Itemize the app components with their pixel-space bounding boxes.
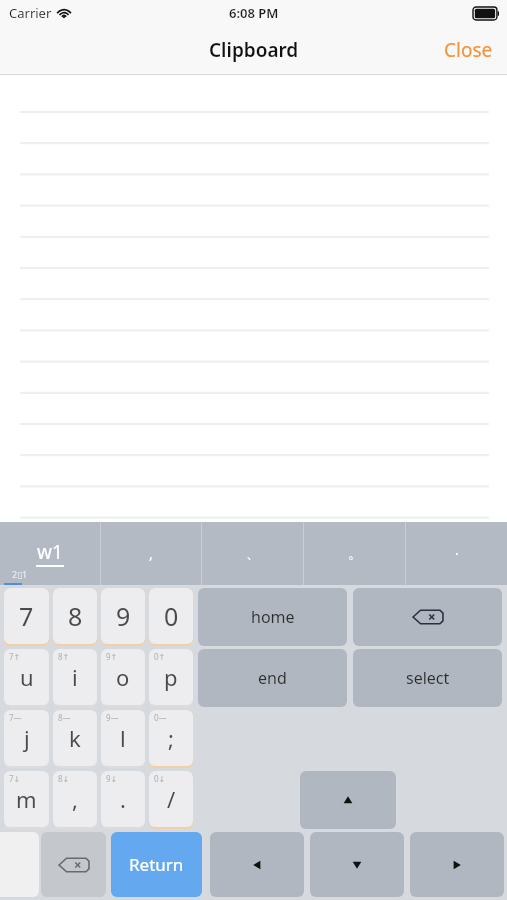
button[interactable]: Backspace (353, 588, 502, 646)
button[interactable]: 9↑ (101, 649, 145, 705)
staticText: 9— (106, 712, 119, 723)
button[interactable]: Right (410, 832, 504, 897)
button[interactable]: w1 (0, 522, 100, 585)
staticText: 8 (68, 599, 83, 633)
button[interactable]: 0 (149, 588, 193, 644)
button[interactable]: 8↑ (53, 649, 97, 705)
staticText: m (16, 784, 37, 814)
button[interactable]: Return (111, 832, 202, 897)
button[interactable]: 7↓ (4, 771, 49, 827)
button[interactable]: Down (310, 832, 404, 897)
staticText: o (116, 662, 130, 692)
staticText: select (406, 667, 450, 689)
button[interactable]: 8— (53, 710, 97, 766)
staticText: 7↑ (9, 651, 21, 662)
staticText: 6:08 PM (229, 4, 279, 22)
staticText: . (120, 784, 126, 814)
button[interactable]: 7 (4, 588, 49, 644)
staticText: , (149, 544, 153, 563)
staticText: · (455, 544, 459, 563)
button[interactable]: Left (210, 832, 304, 897)
staticText: k (69, 723, 81, 753)
button[interactable]: home (198, 588, 347, 646)
button[interactable]: 0↑ (149, 649, 193, 705)
staticText: 9 (116, 599, 131, 633)
button[interactable]: Close (430, 26, 507, 74)
staticText: 8— (58, 712, 71, 723)
staticText: end (258, 667, 287, 689)
staticText: 8↑ (58, 651, 70, 662)
staticText: p (164, 662, 178, 692)
button[interactable]: 9 (101, 588, 145, 644)
staticText: home (251, 606, 295, 628)
staticText: 9↓ (106, 773, 118, 784)
staticText: 7— (9, 712, 22, 723)
staticText: u (20, 662, 34, 692)
button[interactable] (0, 75, 507, 522)
staticText: 0↓ (154, 773, 166, 784)
staticText: 7↓ (9, 773, 21, 784)
staticText: Carrier (9, 4, 52, 22)
staticText: 0 (164, 599, 179, 633)
staticText: 8↓ (58, 773, 70, 784)
staticText: 7 (19, 599, 34, 633)
staticText: 9↑ (106, 651, 118, 662)
staticText: i (72, 662, 78, 692)
button[interactable]: 0— (149, 710, 193, 766)
staticText: Clipboard (209, 37, 299, 63)
staticText: 0↑ (154, 651, 166, 662)
button[interactable]: 0↓ (149, 771, 193, 827)
button[interactable]: 9↓ (101, 771, 145, 827)
button[interactable]: 7— (4, 710, 49, 766)
staticText: 0— (154, 712, 167, 723)
button[interactable]: end (198, 649, 347, 707)
staticText: j (24, 723, 30, 753)
button[interactable]: 9— (101, 710, 145, 766)
button[interactable]: select (353, 649, 502, 707)
button[interactable]: 8↓ (53, 771, 97, 827)
staticText: ; (168, 723, 174, 753)
button[interactable]: 7↑ (4, 649, 49, 705)
staticText: , (72, 784, 78, 814)
button[interactable]: Delete (41, 832, 106, 897)
button[interactable]: 8 (53, 588, 97, 644)
staticText: l (120, 723, 126, 753)
staticText: 2▯1 (12, 568, 28, 580)
staticText: Close (444, 37, 493, 63)
staticText: w1 (37, 539, 63, 565)
button[interactable]: Up (300, 771, 396, 829)
staticText: 。 (348, 545, 362, 563)
staticText: Return (129, 853, 184, 876)
staticText: 、 (246, 545, 260, 563)
staticText: / (167, 784, 176, 814)
